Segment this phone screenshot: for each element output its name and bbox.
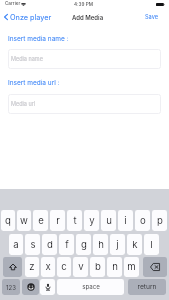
- button[interactable]: b: [90, 257, 105, 277]
- staticText: o: [140, 215, 146, 227]
- staticText: d: [47, 239, 53, 251]
- button[interactable]: s: [25, 234, 40, 255]
- button[interactable]: h: [93, 234, 108, 255]
- staticText: Add Media: [72, 14, 104, 21]
- button[interactable]: c: [57, 257, 71, 277]
- staticText: z: [29, 261, 35, 273]
- button[interactable]: z: [25, 257, 39, 277]
- button[interactable]: e: [33, 210, 48, 231]
- button[interactable]: 123: [2, 279, 20, 295]
- button[interactable]: v: [73, 257, 88, 277]
- button[interactable]: n: [107, 257, 122, 277]
- button[interactable]: r: [50, 210, 65, 231]
- button[interactable]: d: [42, 234, 57, 255]
- button[interactable]: a: [9, 234, 23, 255]
- button[interactable]: q: [1, 210, 15, 231]
- button[interactable]: return: [128, 279, 166, 295]
- button[interactable]: Backspace: [143, 257, 167, 277]
- staticText: s: [30, 239, 36, 251]
- staticText: Media name: [11, 56, 43, 63]
- staticText: v: [78, 261, 84, 273]
- button[interactable]: Shift: [3, 257, 22, 277]
- button[interactable]: g: [76, 234, 91, 255]
- button[interactable]: Onze player: [2, 10, 54, 24]
- button[interactable]: Save: [137, 10, 169, 24]
- staticText: return: [137, 283, 157, 291]
- button[interactable]: f: [59, 234, 74, 255]
- button[interactable]: l: [144, 234, 159, 255]
- staticText: w: [20, 215, 28, 227]
- staticText: c: [61, 261, 67, 273]
- staticText: h: [98, 239, 104, 251]
- staticText: Media url: [11, 101, 36, 108]
- button[interactable]: Dictate: [40, 279, 55, 295]
- staticText: b: [95, 261, 101, 273]
- staticText: q: [5, 215, 11, 227]
- staticText: x: [45, 261, 51, 273]
- button[interactable]: k: [127, 234, 142, 255]
- staticText: e: [38, 215, 44, 227]
- staticText: k: [132, 239, 138, 251]
- staticText: m: [127, 261, 136, 273]
- button[interactable]: o: [135, 210, 150, 231]
- staticText: n: [112, 261, 118, 273]
- staticText: l: [150, 239, 153, 251]
- button[interactable]: Emoji: [22, 279, 39, 295]
- button[interactable]: j: [110, 234, 125, 255]
- staticText: i: [124, 215, 127, 227]
- staticText: r: [56, 215, 60, 227]
- staticText: j: [116, 239, 119, 251]
- button[interactable]: u: [101, 210, 116, 231]
- button[interactable]: y: [84, 210, 99, 231]
- button[interactable]: m: [124, 257, 139, 277]
- staticText: y: [89, 215, 95, 227]
- button[interactable]: Media url: [8, 94, 161, 114]
- staticText: f: [65, 239, 69, 251]
- button[interactable]: i: [118, 210, 133, 231]
- staticText: g: [81, 239, 87, 251]
- button[interactable]: Media name: [8, 49, 161, 69]
- staticText: 123: [6, 284, 16, 291]
- staticText: t: [73, 215, 77, 227]
- staticText: a: [13, 239, 19, 251]
- button[interactable]: p: [152, 210, 167, 231]
- staticText: Save: [145, 14, 158, 21]
- button[interactable]: w: [17, 210, 31, 231]
- button[interactable]: space: [57, 279, 124, 295]
- staticText: Insert media url :: [8, 79, 60, 87]
- staticText: 4:39 PM: [74, 1, 93, 7]
- staticText: space: [82, 283, 100, 291]
- staticText: u: [106, 215, 112, 227]
- staticText: Onze player: [10, 13, 52, 22]
- staticText: p: [157, 215, 163, 227]
- button[interactable]: x: [41, 257, 55, 277]
- staticText: Carrier: [5, 1, 21, 7]
- button[interactable]: t: [67, 210, 82, 231]
- staticText: Insert media name :: [8, 35, 69, 43]
